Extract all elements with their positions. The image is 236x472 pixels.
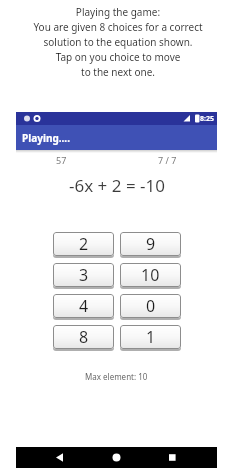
button[interactable]: 4: [53, 294, 114, 319]
button[interactable]: Playing....: [16, 125, 217, 150]
staticText: 0: [146, 295, 156, 317]
button[interactable]: [150, 447, 217, 468]
staticText: 1: [146, 326, 156, 348]
button[interactable]: [83, 447, 150, 468]
staticText: 8: [79, 326, 89, 348]
staticText: Max element: 10: [85, 371, 148, 382]
staticText: 4: [79, 295, 89, 317]
button[interactable]: 1: [120, 325, 181, 350]
button[interactable]: 8: [53, 325, 114, 350]
button[interactable]: 0: [120, 294, 181, 319]
staticText: 2: [79, 233, 89, 255]
staticText: 9: [146, 233, 156, 255]
staticText: 57: [56, 154, 67, 166]
button[interactable]: [16, 447, 83, 468]
staticText: 10: [141, 264, 160, 286]
staticText: 7 / 7: [158, 154, 177, 166]
button[interactable]: 10: [120, 263, 181, 288]
staticText: 3: [79, 264, 89, 286]
staticText: Playing....: [22, 131, 70, 145]
button[interactable]: 9: [120, 232, 181, 257]
staticText: Playing the game: You are given 8 choice…: [0, 5, 236, 79]
button[interactable]: 3: [53, 263, 114, 288]
button[interactable]: 2: [53, 232, 114, 257]
staticText: 8:25: [200, 114, 214, 124]
staticText: -6x + 2 = -10: [69, 174, 165, 197]
